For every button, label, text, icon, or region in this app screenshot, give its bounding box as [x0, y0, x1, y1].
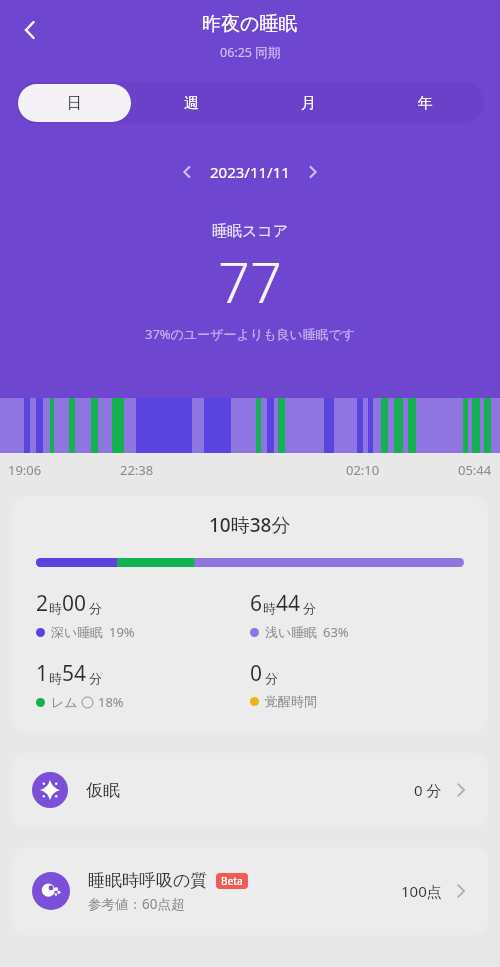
button[interactable]: 年	[369, 84, 482, 122]
staticText: 分	[265, 670, 278, 686]
staticText: 63%	[323, 623, 349, 641]
button[interactable]: Next day	[297, 156, 329, 188]
staticText: レム	[51, 694, 78, 710]
staticText: 19:06	[8, 461, 42, 479]
staticText: 37%のユーザーよりも良い睡眠です	[145, 325, 356, 343]
staticText: 日	[67, 94, 82, 113]
button[interactable]: 月	[252, 84, 365, 122]
staticText: 月	[301, 94, 316, 113]
staticText: 18%	[98, 693, 124, 711]
staticText: 19%	[109, 623, 135, 641]
staticText: 2023/11/11	[210, 162, 290, 182]
staticText: 分	[303, 600, 316, 616]
staticText: 浅い睡眠	[265, 624, 318, 640]
staticText: 睡眠時呼吸の質	[88, 870, 208, 891]
staticText: 00	[62, 589, 87, 618]
staticText: 22:38	[120, 461, 154, 479]
staticText: 週	[184, 94, 199, 113]
button[interactable]: 睡眠時呼吸の質	[12, 847, 488, 935]
button[interactable]: Previous day	[171, 156, 203, 188]
staticText: 0	[250, 659, 263, 688]
staticText: 深い睡眠	[51, 624, 104, 640]
staticText: 昨夜の睡眠	[202, 12, 298, 36]
staticText: Beta	[221, 874, 243, 888]
staticText: 分	[89, 600, 102, 616]
staticText: 02:10	[346, 461, 380, 479]
staticText: 54	[62, 659, 87, 688]
staticText: 1	[36, 659, 49, 688]
staticText: 時	[49, 600, 62, 616]
staticText: 分	[89, 670, 102, 686]
staticText: 10時38分	[209, 512, 291, 538]
staticText: 77	[218, 243, 282, 319]
button[interactable]: Back	[8, 8, 52, 52]
staticText: 0 分	[414, 780, 442, 800]
staticText: 6	[250, 589, 263, 618]
staticText: 44	[276, 589, 301, 618]
button[interactable]: 日	[18, 84, 131, 122]
staticText: 年	[418, 94, 433, 113]
staticText: 参考値：60点超	[88, 895, 185, 913]
staticText: 覚醒時間	[265, 693, 317, 709]
staticText: 05:44	[458, 461, 492, 479]
staticText: 時	[263, 600, 276, 616]
staticText: 06:25 同期	[220, 44, 281, 61]
staticText: 100点	[401, 881, 442, 901]
button[interactable]: 週	[135, 84, 248, 122]
staticText: 時	[49, 670, 62, 686]
staticText: 仮眠	[86, 780, 120, 801]
staticText: 2	[36, 589, 49, 618]
button[interactable]: 仮眠	[12, 753, 488, 827]
staticText: 睡眠スコア	[212, 222, 289, 241]
